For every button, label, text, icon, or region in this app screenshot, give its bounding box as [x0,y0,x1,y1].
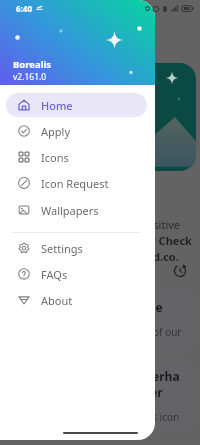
staticText: board.co. [128,249,179,264]
staticText: Home [41,98,73,113]
staticText: 6:40 [16,3,32,14]
button[interactable]: FAQs [6,262,147,286]
button[interactable]: Home [6,93,147,117]
staticText: Icons [41,150,69,165]
button[interactable]: Wallpapers [6,198,147,222]
staticText: details icon [126,410,180,424]
staticText: FAQs [41,267,68,282]
button[interactable] [70,290,196,353]
staticText: Maperha [126,368,180,384]
button[interactable]: Icons [6,145,147,169]
staticText: Be a part of our [108,325,182,339]
button[interactable]: Icon Request [6,171,147,195]
staticText: Settings [41,241,83,256]
staticText: Borealis [13,58,52,71]
staticText: disver [126,384,163,400]
button[interactable] [70,359,196,433]
staticText: Apply [41,124,71,139]
staticText: About [41,293,73,308]
staticText: way? Check [128,233,192,248]
button[interactable]: About [6,288,147,312]
staticText: Icon Request [41,176,109,191]
staticText: Wallpapers [41,203,99,218]
staticText: v2.161.0 [13,71,47,83]
staticText: ospositive [128,217,181,232]
button[interactable]: Apply [6,119,147,143]
button[interactable]: History [173,264,187,278]
button[interactable]: Settings [6,236,147,260]
staticText: Welcome [108,299,163,315]
